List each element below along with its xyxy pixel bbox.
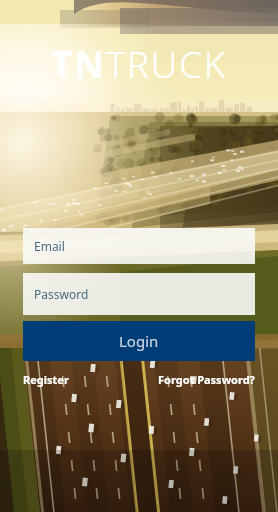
button[interactable]: Forgot Password? [158,372,255,387]
button[interactable]: Login [23,321,255,361]
button[interactable]: Email [23,228,255,264]
staticText: Register [23,372,69,387]
button[interactable]: Register [23,372,69,387]
staticText: Login [119,331,159,351]
staticText: Password [34,286,89,302]
staticText: Forgot Password? [158,372,255,387]
staticText: Email [34,238,65,254]
button[interactable]: Password [23,273,255,315]
staticText: TNTRUCK [51,38,227,88]
